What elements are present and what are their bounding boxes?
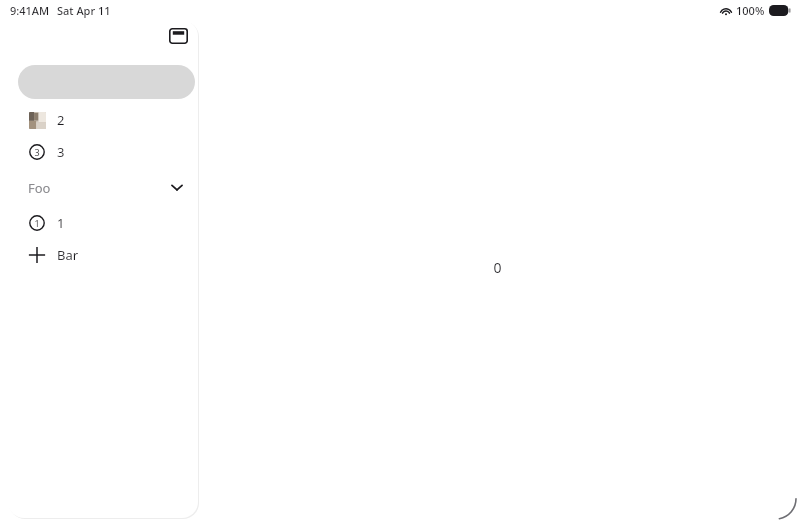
staticText: 0 — [493, 258, 502, 277]
staticText: Sat Apr 11 — [57, 3, 111, 18]
staticText: 1 — [34, 217, 40, 229]
button[interactable]: Toggle side panel — [166, 24, 190, 48]
button[interactable]: 1 — [8, 207, 198, 239]
button[interactable]: 3 — [8, 136, 198, 168]
staticText: 1 — [57, 214, 65, 232]
staticText: Bar — [57, 246, 79, 264]
button[interactable]: Foo — [8, 168, 198, 207]
staticText: 100% — [736, 3, 765, 18]
staticText: 9:41AM — [10, 3, 50, 18]
staticText: 3 — [57, 143, 65, 161]
staticText: 3 — [34, 146, 40, 158]
button[interactable]: 2 — [8, 104, 198, 136]
staticText: Foo — [28, 179, 51, 197]
button[interactable]: Search — [18, 65, 195, 99]
button[interactable]: Bar — [8, 239, 198, 271]
staticText: 2 — [57, 111, 65, 129]
